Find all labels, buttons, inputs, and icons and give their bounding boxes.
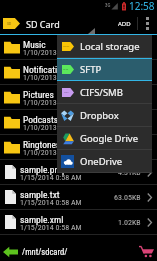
staticText: /mnt/sdcard/ [22, 247, 68, 257]
button[interactable]: sample.prop [0, 160, 157, 184]
button[interactable]: More options [138, 13, 157, 34]
button[interactable]: sample.txt [0, 185, 157, 209]
staticText: 1.02KB [118, 218, 141, 227]
staticText: LOCAL [63, 45, 70, 48]
staticText: Ringtones [23, 139, 61, 150]
button[interactable]: Dropbox [57, 104, 152, 127]
staticText: 1/15/2014 0:58 AM [20, 198, 82, 207]
staticText: OneDrive [80, 155, 123, 168]
button[interactable]: Music [0, 35, 157, 59]
staticText: Podcasts [23, 114, 59, 125]
staticText: 3G [105, 2, 111, 8]
staticText: Music [23, 39, 46, 50]
button[interactable]: Up one level [3, 246, 18, 258]
staticText: sample.txt [20, 189, 60, 200]
staticText: sample.xml [20, 214, 64, 225]
button[interactable]: SD [0, 13, 157, 34]
staticText: 1/10/2013 11:21 AM [23, 123, 89, 132]
staticText: SD [7, 21, 12, 26]
staticText: SFTP [63, 68, 69, 71]
button[interactable]: ADD [112, 13, 137, 34]
staticText: 1/10/2013 11:21 AM [23, 48, 89, 57]
button[interactable]: CIFS [57, 81, 152, 104]
staticText: Notifications [23, 64, 71, 75]
staticText: CIFS/SMB [80, 86, 123, 99]
button[interactable]: OneDrive [57, 150, 152, 173]
staticText: 1/10/2013 11:21 AM [23, 148, 89, 157]
staticText: ADD [118, 20, 131, 28]
staticText: 1/15/2014 0:58 AM [20, 173, 82, 182]
staticText: SD Card [26, 18, 60, 30]
staticText: Local storage [80, 40, 140, 53]
staticText: SFTP [80, 63, 102, 76]
staticText: 1/15/2014 0:58 AM [20, 223, 82, 232]
button[interactable]: Ringtones [0, 135, 157, 159]
button[interactable]: SFTP [57, 58, 152, 81]
staticText: Dropbox [80, 109, 119, 122]
button[interactable]: LOCAL [57, 35, 152, 58]
staticText: sample.prop [20, 164, 67, 175]
staticText: 4.31KB [118, 168, 141, 177]
button[interactable]: Cart [135, 242, 157, 261]
staticText: Pictures [23, 89, 54, 100]
button[interactable]: Podcasts [0, 110, 157, 134]
staticText: CIFS [64, 91, 69, 94]
staticText: 12:58 [129, 0, 155, 12]
button[interactable]: Google Drive [57, 127, 152, 150]
staticText: Google Drive [80, 132, 139, 145]
staticText: 1/10/2013 11:21 AM [23, 73, 89, 82]
staticText: 1/10/2013 11:21 AM [23, 98, 89, 107]
button[interactable]: sample.xml [0, 210, 157, 234]
staticText: 63.05KB [114, 193, 141, 202]
button[interactable]: Notifications [0, 60, 157, 84]
button[interactable]: Pictures [0, 85, 157, 109]
